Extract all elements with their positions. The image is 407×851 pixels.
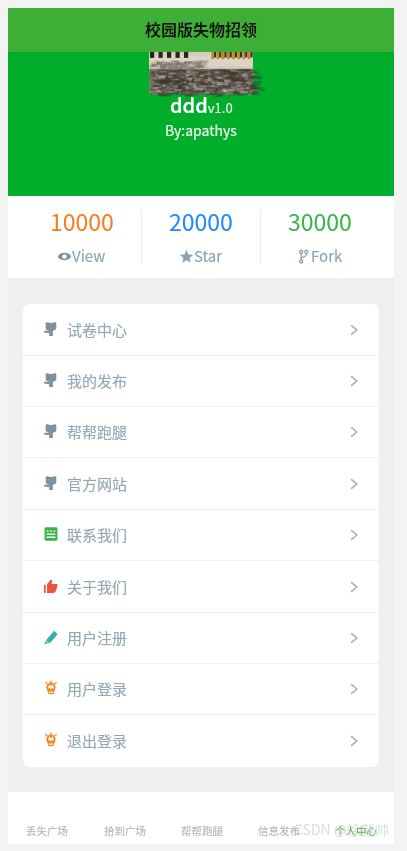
button[interactable]: 用户登录 [23, 664, 379, 714]
button[interactable]: 官方网站 [23, 458, 379, 509]
button[interactable]: 个人中心 [317, 792, 394, 844]
staticText: dddv1.0 [170, 90, 233, 119]
staticText: 20000 [169, 204, 233, 237]
staticText: 校园版失物招领 [145, 17, 258, 40]
button[interactable]: 我的发布 [23, 356, 379, 406]
staticText: By:apathys [165, 120, 237, 140]
staticText: 个人中心 [335, 823, 377, 838]
staticText: 关于我们 [67, 576, 128, 598]
button[interactable]: 20000 [142, 194, 260, 276]
button[interactable]: 拾到广场 [86, 792, 163, 844]
button[interactable]: 试卷中心 [23, 304, 379, 355]
staticText: 帮帮跑腿 [67, 421, 128, 443]
staticText: 我的发布 [67, 370, 128, 392]
staticText: 帮帮跑腿 [181, 823, 223, 838]
staticText: 用户登录 [67, 678, 128, 700]
staticText: 丢失广场 [26, 823, 68, 838]
button[interactable]: 帮帮跑腿 [163, 792, 240, 844]
button[interactable]: 退出登录 [23, 715, 379, 767]
staticText: Fork [311, 245, 343, 267]
staticText: Star [194, 245, 223, 267]
staticText: 联系我们 [67, 524, 128, 546]
button[interactable]: 联系我们 [23, 510, 379, 560]
staticText: 用户注册 [67, 627, 128, 649]
button[interactable]: 用户注册 [23, 613, 379, 663]
staticText: View [72, 245, 106, 267]
staticText: 30000 [288, 204, 352, 237]
button[interactable]: 关于我们 [23, 561, 379, 612]
button[interactable]: 信息发布 [240, 792, 317, 844]
staticText: 官方网站 [67, 473, 128, 495]
button[interactable]: 丢失广场 [8, 792, 86, 844]
button[interactable]: 30000 [261, 194, 379, 276]
staticText: CSDN @徐新帅 [294, 819, 390, 839]
staticText: 10000 [50, 204, 114, 237]
staticText: 拾到广场 [104, 823, 146, 838]
button[interactable]: 帮帮跑腿 [23, 407, 379, 457]
staticText: 退出登录 [67, 730, 128, 752]
staticText: 试卷中心 [67, 319, 128, 341]
staticText: 信息发布 [258, 823, 300, 838]
button[interactable]: 10000 [23, 194, 141, 276]
